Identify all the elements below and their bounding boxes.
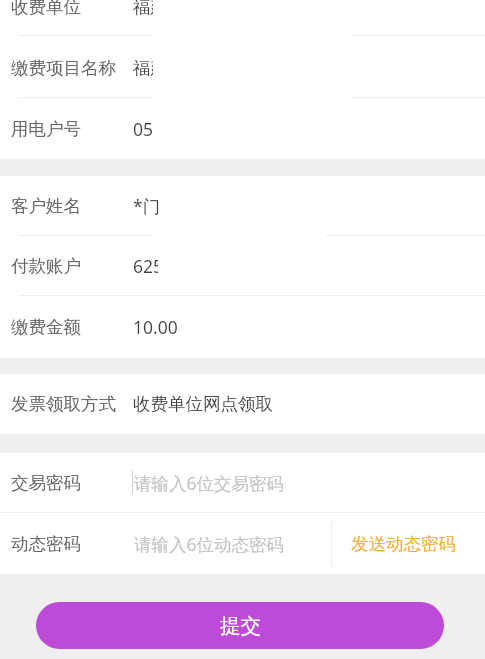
staticText: 发送动态密码	[351, 533, 456, 555]
button[interactable]: 交易密码	[0, 453, 485, 513]
staticText: 请输入6位动态密码	[134, 532, 285, 556]
staticText: 缴费项目名称	[11, 57, 116, 79]
button[interactable]: 付款账户	[0, 236, 485, 296]
staticText: 收费单位	[11, 0, 81, 18]
staticText: 客户姓名	[11, 195, 81, 217]
staticText: 交易密码	[11, 472, 81, 494]
staticText: 提交	[220, 613, 261, 639]
button[interactable]: 发送动态密码	[332, 513, 478, 574]
staticText: 请输入6位交易密码	[134, 471, 285, 495]
staticText: 发票领取方式	[11, 393, 116, 415]
staticText: 福建省电力有限公司	[133, 0, 153, 18]
staticText: 付款账户	[11, 255, 81, 277]
staticText: 福建省电费	[133, 57, 153, 79]
staticText: 6255000012345678	[133, 254, 158, 278]
button[interactable]: 客户姓名	[0, 176, 485, 236]
button[interactable]: 缴费项目名称	[0, 37, 485, 98]
button[interactable]: 动态密码	[0, 513, 485, 574]
button[interactable]: 提交	[36, 602, 444, 649]
button[interactable]: 发票领取方式	[0, 374, 485, 434]
staticText: *门某某	[133, 194, 159, 218]
button[interactable]: 用电户号	[0, 98, 485, 159]
button[interactable]: 收费单位	[0, 0, 485, 35]
staticText: 缴费金额	[11, 316, 81, 338]
staticText: 动态密码	[11, 533, 81, 555]
button[interactable]: 缴费金额	[0, 296, 485, 358]
staticText: 10.00	[133, 315, 178, 339]
staticText: 0512345678	[133, 117, 154, 141]
staticText: 收费单位网点领取	[133, 393, 273, 415]
staticText: 用电户号	[11, 118, 81, 140]
